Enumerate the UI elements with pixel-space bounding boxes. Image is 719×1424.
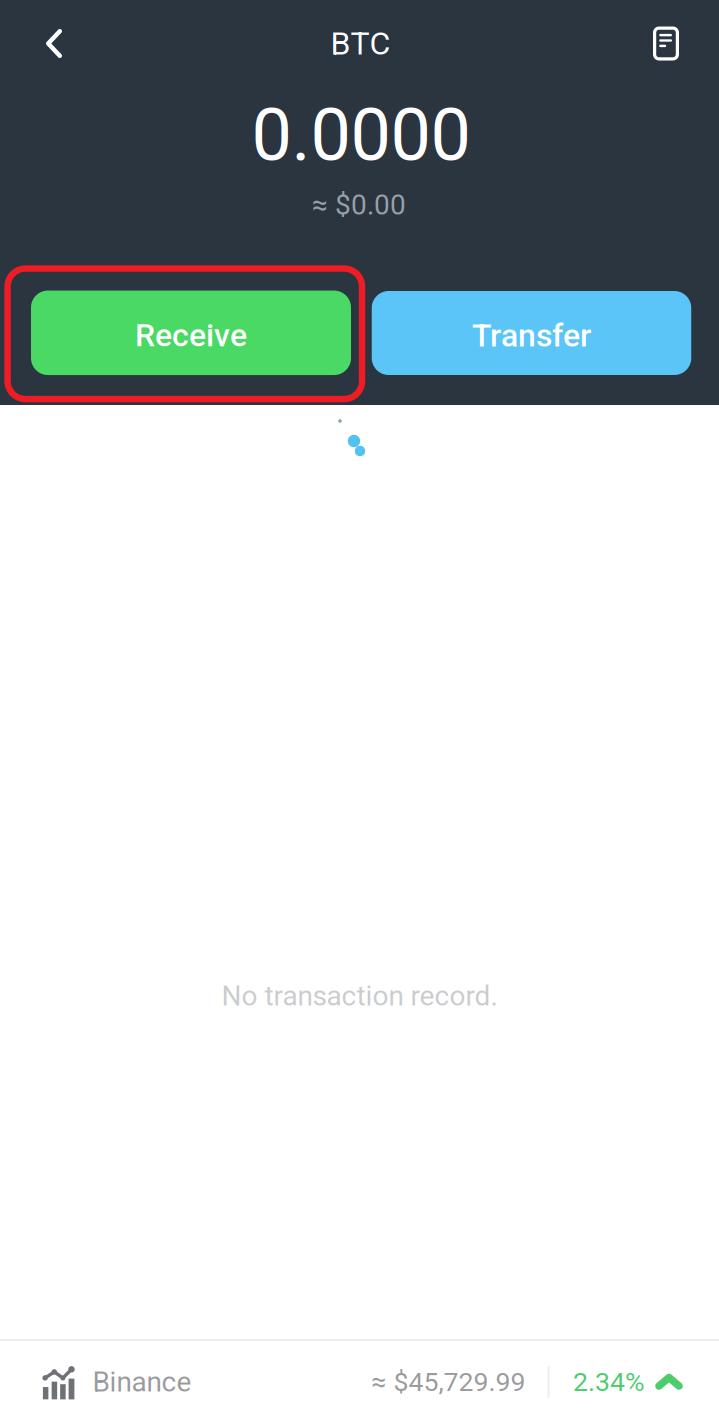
- staticText: BTC: [330, 25, 390, 62]
- staticText: 0.0000: [251, 93, 470, 178]
- staticText: 2.34%: [573, 1366, 645, 1398]
- button[interactable]: Back: [6, 5, 102, 81]
- staticText: Transfer: [472, 317, 591, 354]
- button[interactable]: Transfer: [372, 291, 691, 375]
- staticText: No transaction record.: [221, 980, 497, 1012]
- button[interactable]: Transaction records: [623, 5, 709, 81]
- staticText: ≈ $45,729.99: [371, 1366, 525, 1398]
- staticText: ≈ $0.00: [312, 189, 406, 221]
- staticText: Receive: [135, 317, 247, 354]
- staticText: Binance: [92, 1366, 191, 1398]
- button[interactable]: Binance: [0, 1341, 719, 1424]
- button[interactable]: Receive: [31, 291, 351, 375]
